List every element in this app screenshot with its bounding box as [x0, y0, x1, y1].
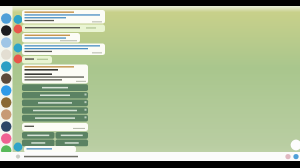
button[interactable]: Keyboard button 5	[22, 115, 88, 122]
button[interactable]: Keyboard button 2	[22, 92, 88, 99]
button[interactable]: Grid button 2	[56, 132, 89, 139]
button[interactable]: Keyboard button 3	[22, 100, 88, 107]
button[interactable]: Send	[292, 152, 300, 160]
button[interactable]: Grid button 4	[56, 140, 89, 147]
button[interactable]: Grid button 1	[22, 132, 55, 139]
button[interactable]: Keyboard button 4	[22, 107, 88, 114]
button[interactable]: Grid button 3	[22, 140, 55, 147]
button[interactable]: Message input	[14, 152, 284, 161]
button[interactable]: Scroll to bottom	[290, 139, 300, 150]
button[interactable]: Keyboard button 1	[22, 84, 88, 91]
